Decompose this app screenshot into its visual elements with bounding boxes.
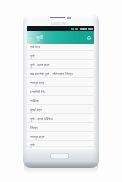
button[interactable]: पुणे - दादर पश्चिम (27, 114, 94, 123)
staticText: पुणे (30, 142, 35, 147)
staticText: जिल्हा (30, 125, 38, 130)
staticText: एक गाव (30, 44, 41, 49)
staticText: सूची (36, 35, 43, 41)
button[interactable]: पुणे (27, 51, 94, 60)
button[interactable]: मुंबई शहर (27, 105, 94, 114)
staticText: पुणे - दादर शहर (30, 62, 50, 67)
button[interactable]: Notifications (86, 35, 92, 41)
button[interactable]: बस स्थानक पुणे - औरंगाबाद जिल्हा (27, 69, 94, 78)
staticText: पुणे (30, 53, 35, 58)
staticText: नागपूर मध्य (30, 80, 45, 85)
button[interactable]: Home (50, 153, 69, 159)
staticText: नागपूर शहर (30, 134, 45, 139)
button[interactable]: एक गाव (27, 44, 94, 51)
button[interactable]: नाशिक (27, 96, 94, 105)
button[interactable]: Navigate up (27, 35, 33, 41)
button[interactable]: पुणे - दादर शहर (27, 60, 94, 69)
button[interactable]: जिल्हा (27, 123, 94, 132)
staticText: मुंबई शहर (30, 107, 43, 112)
staticText: नाशिक (30, 98, 39, 103)
staticText: रत्नागिरी जि. (30, 89, 46, 94)
staticText: SAMSUNG (51, 22, 68, 26)
button[interactable]: पुणे (27, 141, 94, 147)
staticText: बस स्थानक पुणे - औरंगाबाद जिल्हा (30, 71, 73, 76)
button[interactable]: नागपूर शहर (27, 132, 94, 141)
staticText: पुणे - दादर पश्चिम (30, 116, 53, 121)
button[interactable]: रत्नागिरी जि. (27, 87, 94, 96)
button[interactable]: नागपूर मध्य (27, 78, 94, 87)
